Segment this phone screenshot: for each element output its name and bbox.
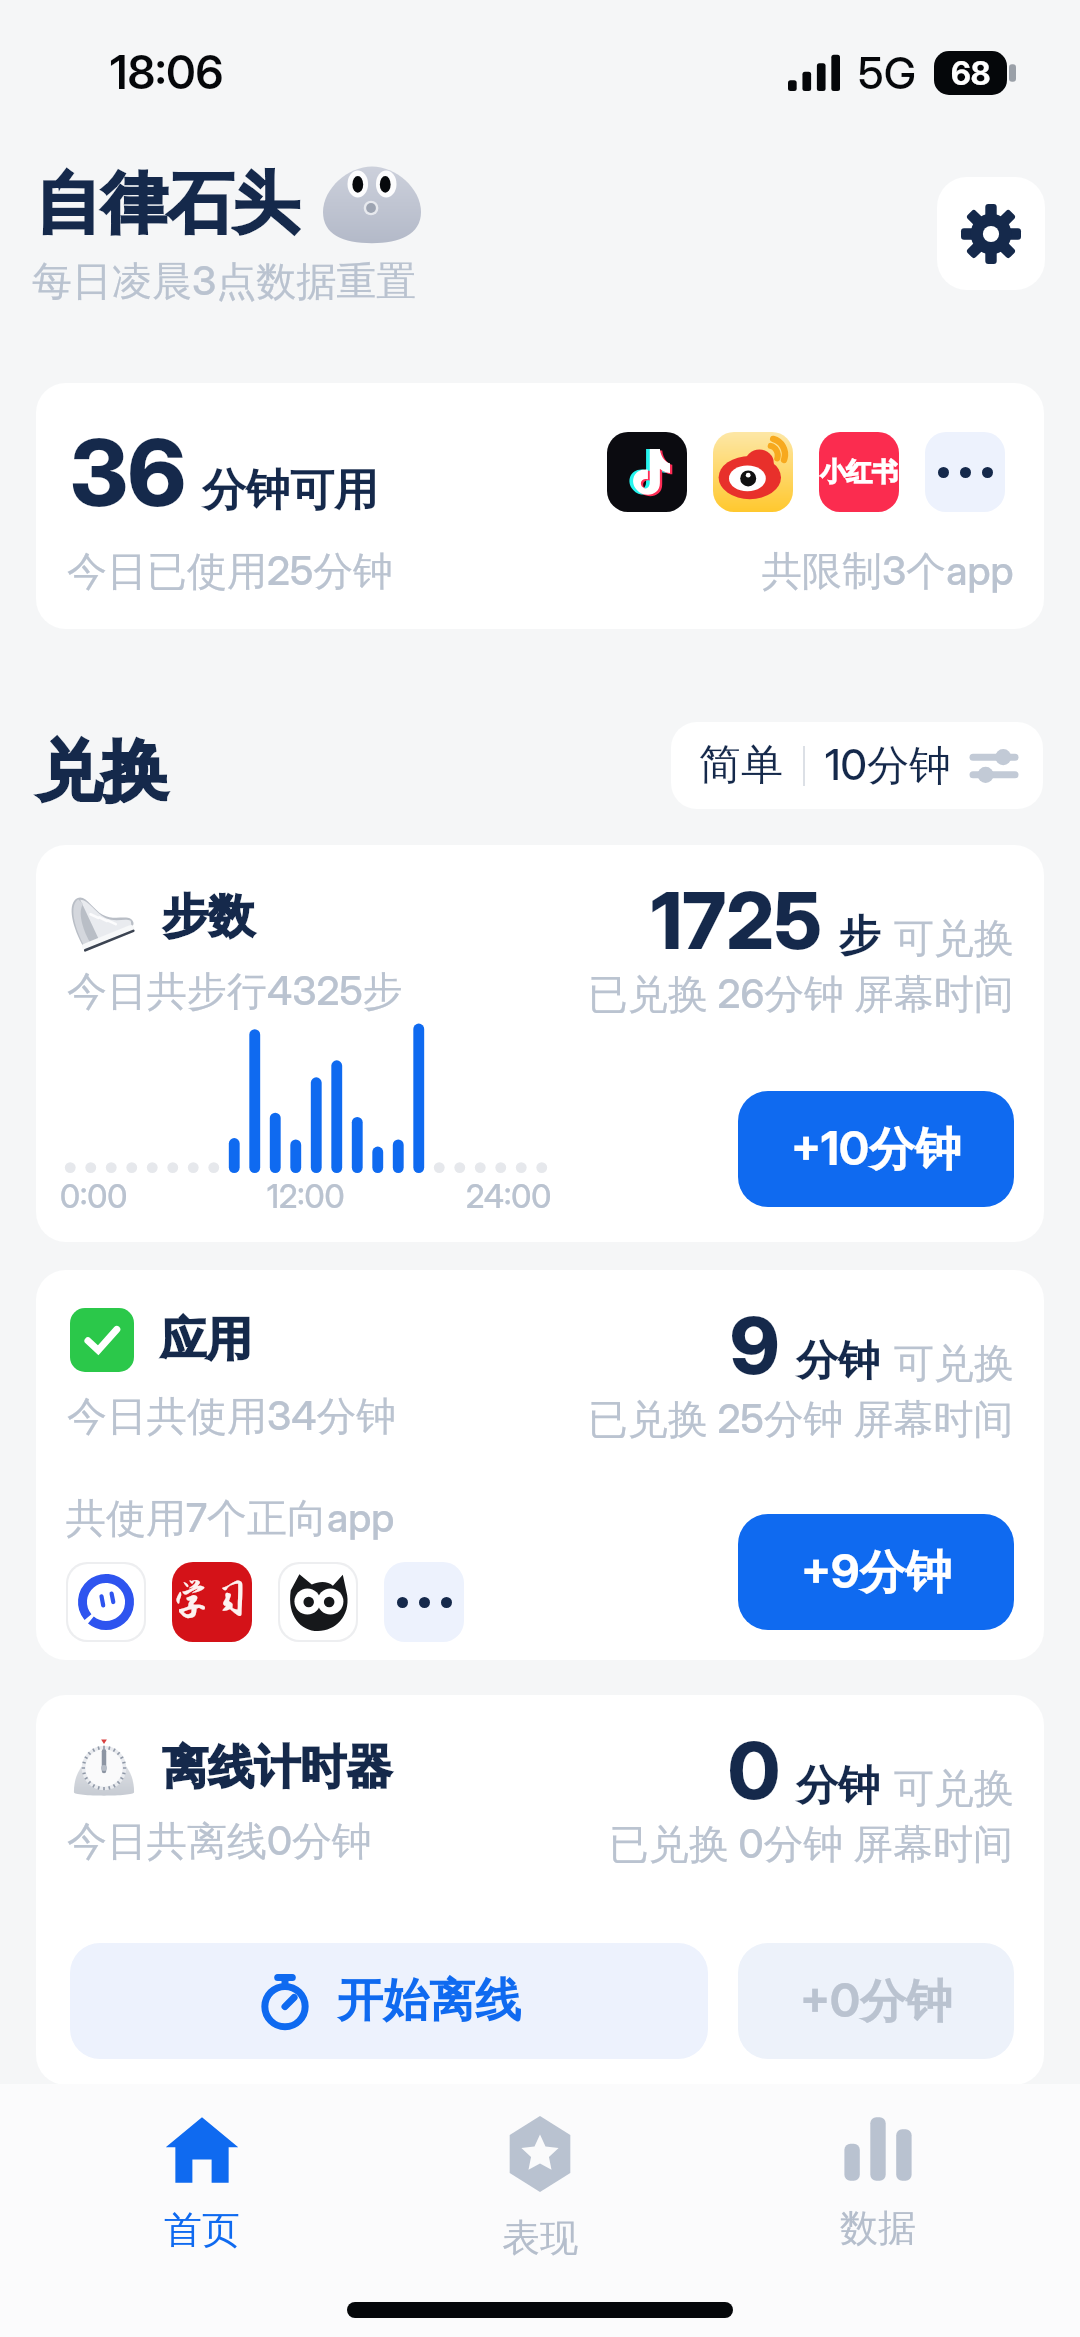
staticText: 可兑换 bbox=[894, 1338, 1014, 1388]
staticText: 兑换 bbox=[36, 730, 168, 813]
staticText: 68 bbox=[951, 54, 991, 93]
staticText: 开始离线 bbox=[337, 1972, 521, 2030]
button[interactable]: 简单 bbox=[671, 722, 1043, 809]
staticText: 0 bbox=[728, 1723, 780, 1817]
button[interactable]: 步数 bbox=[36, 845, 1044, 1242]
button[interactable]: +9分钟 bbox=[738, 1514, 1014, 1630]
staticText: 今日已使用25分钟 bbox=[67, 546, 394, 597]
staticText: 共限制3个app bbox=[762, 546, 1014, 597]
staticText: 9 bbox=[730, 1298, 780, 1392]
button[interactable]: +0分钟 bbox=[738, 1943, 1014, 2059]
staticText: 首页 bbox=[164, 2206, 240, 2254]
staticText: 已兑换 0分钟 屏幕时间 bbox=[609, 1819, 1014, 1870]
button[interactable]: 首页 bbox=[33, 2084, 371, 2256]
staticText: 应用 bbox=[160, 1311, 252, 1369]
staticText: 今日共步行4325步 bbox=[67, 966, 403, 1017]
staticText: 步数 bbox=[162, 888, 254, 946]
staticText: 步 bbox=[838, 910, 880, 963]
button[interactable]: 应用 bbox=[36, 1270, 1044, 1660]
staticText: 10分钟 bbox=[825, 739, 951, 792]
staticText: +0分钟 bbox=[800, 1972, 953, 2030]
button[interactable]: Settings bbox=[937, 177, 1045, 290]
staticText: 可兑换 bbox=[894, 1763, 1014, 1813]
staticText: 12:00 bbox=[267, 1177, 345, 1216]
staticText: 表现 bbox=[502, 2214, 578, 2256]
staticText: 0:00 bbox=[60, 1177, 128, 1216]
staticText: 简单 bbox=[699, 739, 783, 792]
staticText: 今日共使用34分钟 bbox=[67, 1391, 397, 1442]
staticText: 学习 bbox=[172, 1577, 250, 1623]
staticText: 1725 bbox=[651, 873, 822, 967]
staticText: +9分钟 bbox=[801, 1543, 952, 1601]
button[interactable]: 表现 bbox=[371, 2084, 709, 2256]
staticText: +10分钟 bbox=[791, 1120, 961, 1178]
staticText: 每日凌晨3点数据重置 bbox=[32, 256, 417, 307]
staticText: 24:00 bbox=[466, 1177, 552, 1216]
staticText: 分钟 bbox=[796, 1335, 880, 1388]
button[interactable]: +10分钟 bbox=[738, 1091, 1014, 1207]
staticText: 已兑换 26分钟 屏幕时间 bbox=[588, 969, 1014, 1020]
staticText: 5G bbox=[858, 46, 916, 99]
staticText: 分钟可用 bbox=[202, 463, 378, 518]
button[interactable]: 36 bbox=[36, 383, 1044, 629]
button[interactable]: 离线计时器 bbox=[36, 1695, 1044, 2085]
staticText: 数据 bbox=[840, 2204, 916, 2252]
staticText: 分钟 bbox=[796, 1760, 880, 1813]
staticText: 已兑换 25分钟 屏幕时间 bbox=[588, 1394, 1014, 1445]
button[interactable]: More apps bbox=[925, 432, 1005, 512]
staticText: 可兑换 bbox=[894, 913, 1014, 963]
staticText: 自律石头 bbox=[35, 162, 299, 245]
button[interactable]: More apps bbox=[384, 1562, 464, 1642]
staticText: 今日共离线0分钟 bbox=[67, 1816, 373, 1867]
staticText: 共使用7个正向app bbox=[66, 1493, 395, 1544]
button[interactable]: 数据 bbox=[709, 2084, 1047, 2256]
staticText: 36 bbox=[70, 417, 186, 528]
staticText: 小红书 bbox=[820, 456, 898, 489]
button[interactable]: 开始离线 bbox=[70, 1943, 708, 2059]
staticText: 离线计时器 bbox=[162, 1739, 392, 1797]
staticText: 18:06 bbox=[110, 44, 224, 100]
